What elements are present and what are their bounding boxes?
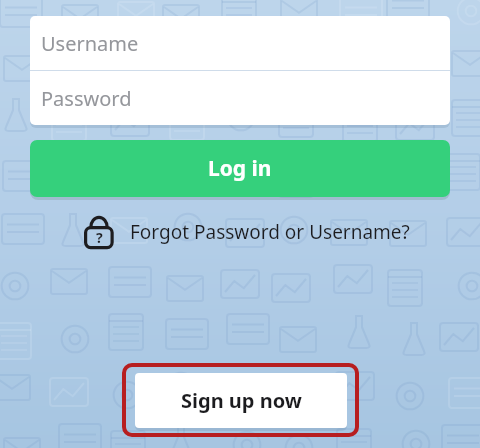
- button[interactable]: ?: [62, 211, 418, 253]
- button[interactable]: Log in: [30, 140, 450, 197]
- staticText: Password: [41, 85, 132, 112]
- staticText: ?: [96, 228, 103, 247]
- button[interactable]: Password: [30, 71, 450, 125]
- button[interactable]: Username: [30, 16, 450, 70]
- staticText: Username: [41, 30, 139, 57]
- staticText: Forgot Password or Username?: [130, 219, 410, 245]
- button[interactable]: Sign up now: [135, 373, 347, 428]
- staticText: Sign up now: [181, 387, 302, 414]
- staticText: Log in: [208, 154, 272, 183]
